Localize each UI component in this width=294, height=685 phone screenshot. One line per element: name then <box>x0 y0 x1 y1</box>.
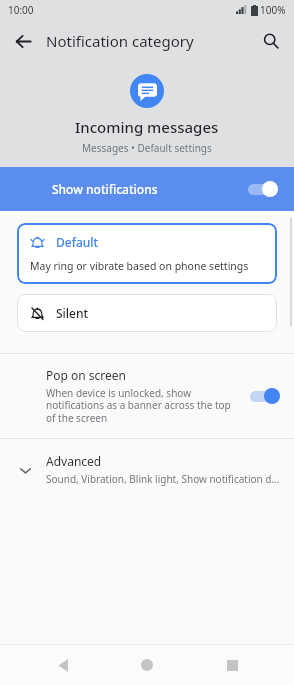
button[interactable]: Show notifications <box>0 167 294 211</box>
staticText: Show notifications <box>52 181 158 197</box>
button[interactable]: Recent apps <box>210 645 254 685</box>
staticText: May ring or vibrate based on phone setti… <box>30 259 249 273</box>
button[interactable]: Back <box>6 24 40 58</box>
staticText: Advanced <box>46 453 102 469</box>
staticText: Pop on screen <box>46 367 126 383</box>
staticText: When device is unlocked, show notificati… <box>46 386 242 425</box>
staticText: Messages • Default settings <box>82 141 212 155</box>
staticText: Incoming messages <box>75 117 219 137</box>
staticText: Silent <box>56 305 89 321</box>
button[interactable]: Home <box>125 645 169 685</box>
button[interactable]: Advanced <box>0 439 294 500</box>
staticText: Notification category <box>46 31 194 51</box>
staticText: 100% <box>260 3 286 17</box>
staticText: Default <box>56 234 99 250</box>
button[interactable]: Default <box>17 223 277 284</box>
button[interactable]: Search <box>254 24 288 58</box>
button[interactable]: Back <box>41 645 85 685</box>
staticText: Sound, Vibration, Blink light, Show noti… <box>46 472 280 486</box>
button[interactable]: Silent <box>17 294 277 332</box>
button[interactable]: Pop on screen <box>0 354 294 438</box>
staticText: 10:00 <box>8 3 34 17</box>
